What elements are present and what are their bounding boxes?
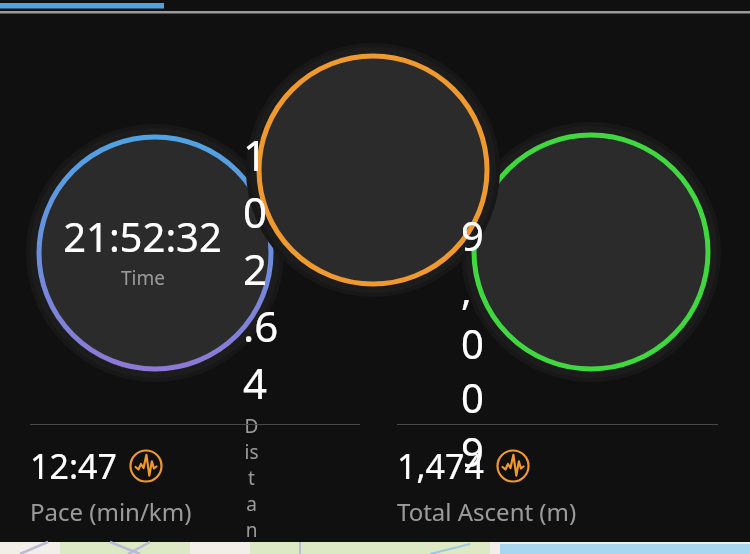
button[interactable]: 1,474 [397, 424, 718, 528]
staticText: Time [121, 265, 165, 291]
staticText: Pace (min/km) [30, 495, 192, 528]
button[interactable]: 102.64 [0, 0, 750, 554]
staticText: Distance (km) [243, 413, 260, 554]
staticText: 12:47 [30, 443, 117, 489]
button[interactable]: 9,009 [0, 0, 750, 554]
staticText: 21:52:32 [63, 209, 222, 263]
button[interactable]: 21:52:32 [0, 0, 750, 554]
other: Activity graph [129, 449, 163, 483]
staticText: 102.64 [243, 126, 260, 411]
button[interactable]: 12:47 [30, 424, 360, 528]
staticText: Total Ascent (m) [397, 495, 577, 528]
other: Activity graph [496, 449, 530, 483]
staticText: 1,474 [397, 443, 484, 489]
